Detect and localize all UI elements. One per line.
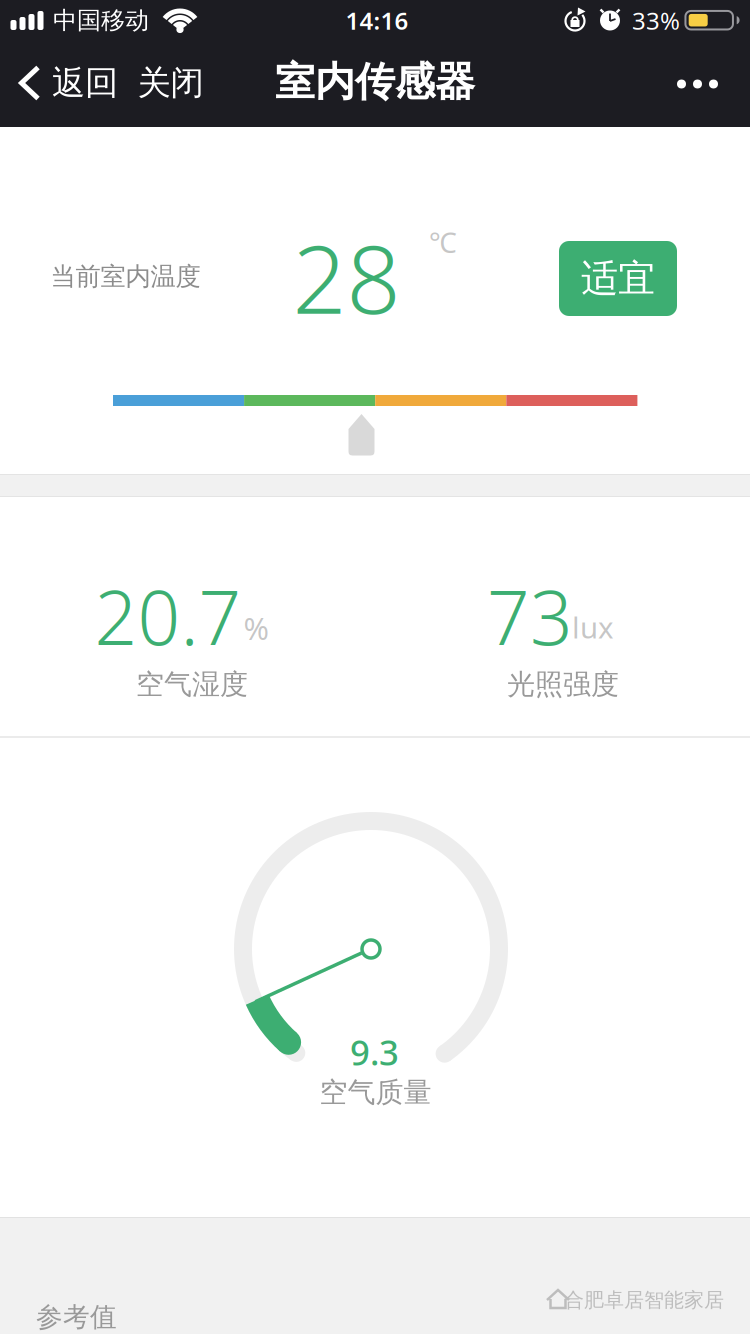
staticText: 20.7 — [94, 566, 241, 666]
staticText: 室内传感器 — [275, 57, 475, 106]
staticText: 适宜 — [581, 256, 655, 301]
staticText: ℃ — [429, 223, 457, 261]
staticText: 9.3 — [350, 1029, 399, 1075]
staticText: % — [243, 608, 268, 648]
staticText: 空气质量 — [319, 1075, 431, 1110]
staticText: 中国移动 — [53, 6, 149, 35]
staticText: 73 — [487, 566, 573, 666]
staticText: 33% — [632, 5, 680, 36]
staticText: 返回 — [52, 62, 118, 103]
staticText: 光照强度 — [507, 667, 619, 702]
button[interactable] — [677, 79, 718, 88]
button[interactable]: 返回 — [18, 62, 118, 103]
staticText: 参考值 — [36, 1301, 117, 1333]
button[interactable]: 适宜 — [559, 241, 677, 316]
staticText: 28 — [292, 214, 400, 340]
staticText: 当前室内温度 — [50, 261, 200, 292]
staticText: lux — [572, 607, 614, 646]
staticText: 14:16 — [345, 5, 408, 36]
button[interactable]: 关闭 — [137, 62, 203, 103]
staticText: 关闭 — [137, 62, 203, 103]
staticText: 空气湿度 — [136, 667, 248, 702]
staticText: 合肥卓居智能家居 — [564, 1288, 724, 1312]
